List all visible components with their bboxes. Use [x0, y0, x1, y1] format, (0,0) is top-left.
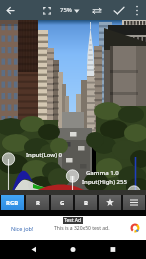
button[interactable]: Back [0, 0, 24, 20]
button[interactable]: R [26, 195, 49, 210]
staticText: B [84, 199, 88, 207]
button[interactable]: G [51, 195, 73, 210]
button[interactable]: B [75, 195, 97, 210]
staticText: R [36, 199, 40, 207]
button[interactable]: Compare [87, 0, 107, 20]
staticText: Input(Low) 0 [26, 151, 62, 159]
staticText: 75% [60, 6, 72, 14]
button[interactable]: Crop [36, 0, 58, 20]
staticText: Input(High) 255 [82, 178, 127, 186]
staticText: RGB [6, 199, 19, 207]
button[interactable]: Presets [99, 195, 121, 210]
button[interactable]: Done [108, 0, 130, 20]
staticText: Test Ad [64, 217, 82, 224]
staticText: Gamma 1.0 [86, 169, 119, 177]
button[interactable]: Menu [123, 195, 145, 210]
button[interactable]: Nice job! [0, 216, 146, 240]
button[interactable]: 75% [60, 0, 86, 20]
staticText: G [60, 199, 65, 207]
button[interactable]: More options [130, 0, 146, 20]
button[interactable]: RGB [1, 195, 24, 210]
staticText: This is a 320x50 test ad. [54, 225, 110, 232]
staticText: Nice job! [11, 225, 34, 232]
